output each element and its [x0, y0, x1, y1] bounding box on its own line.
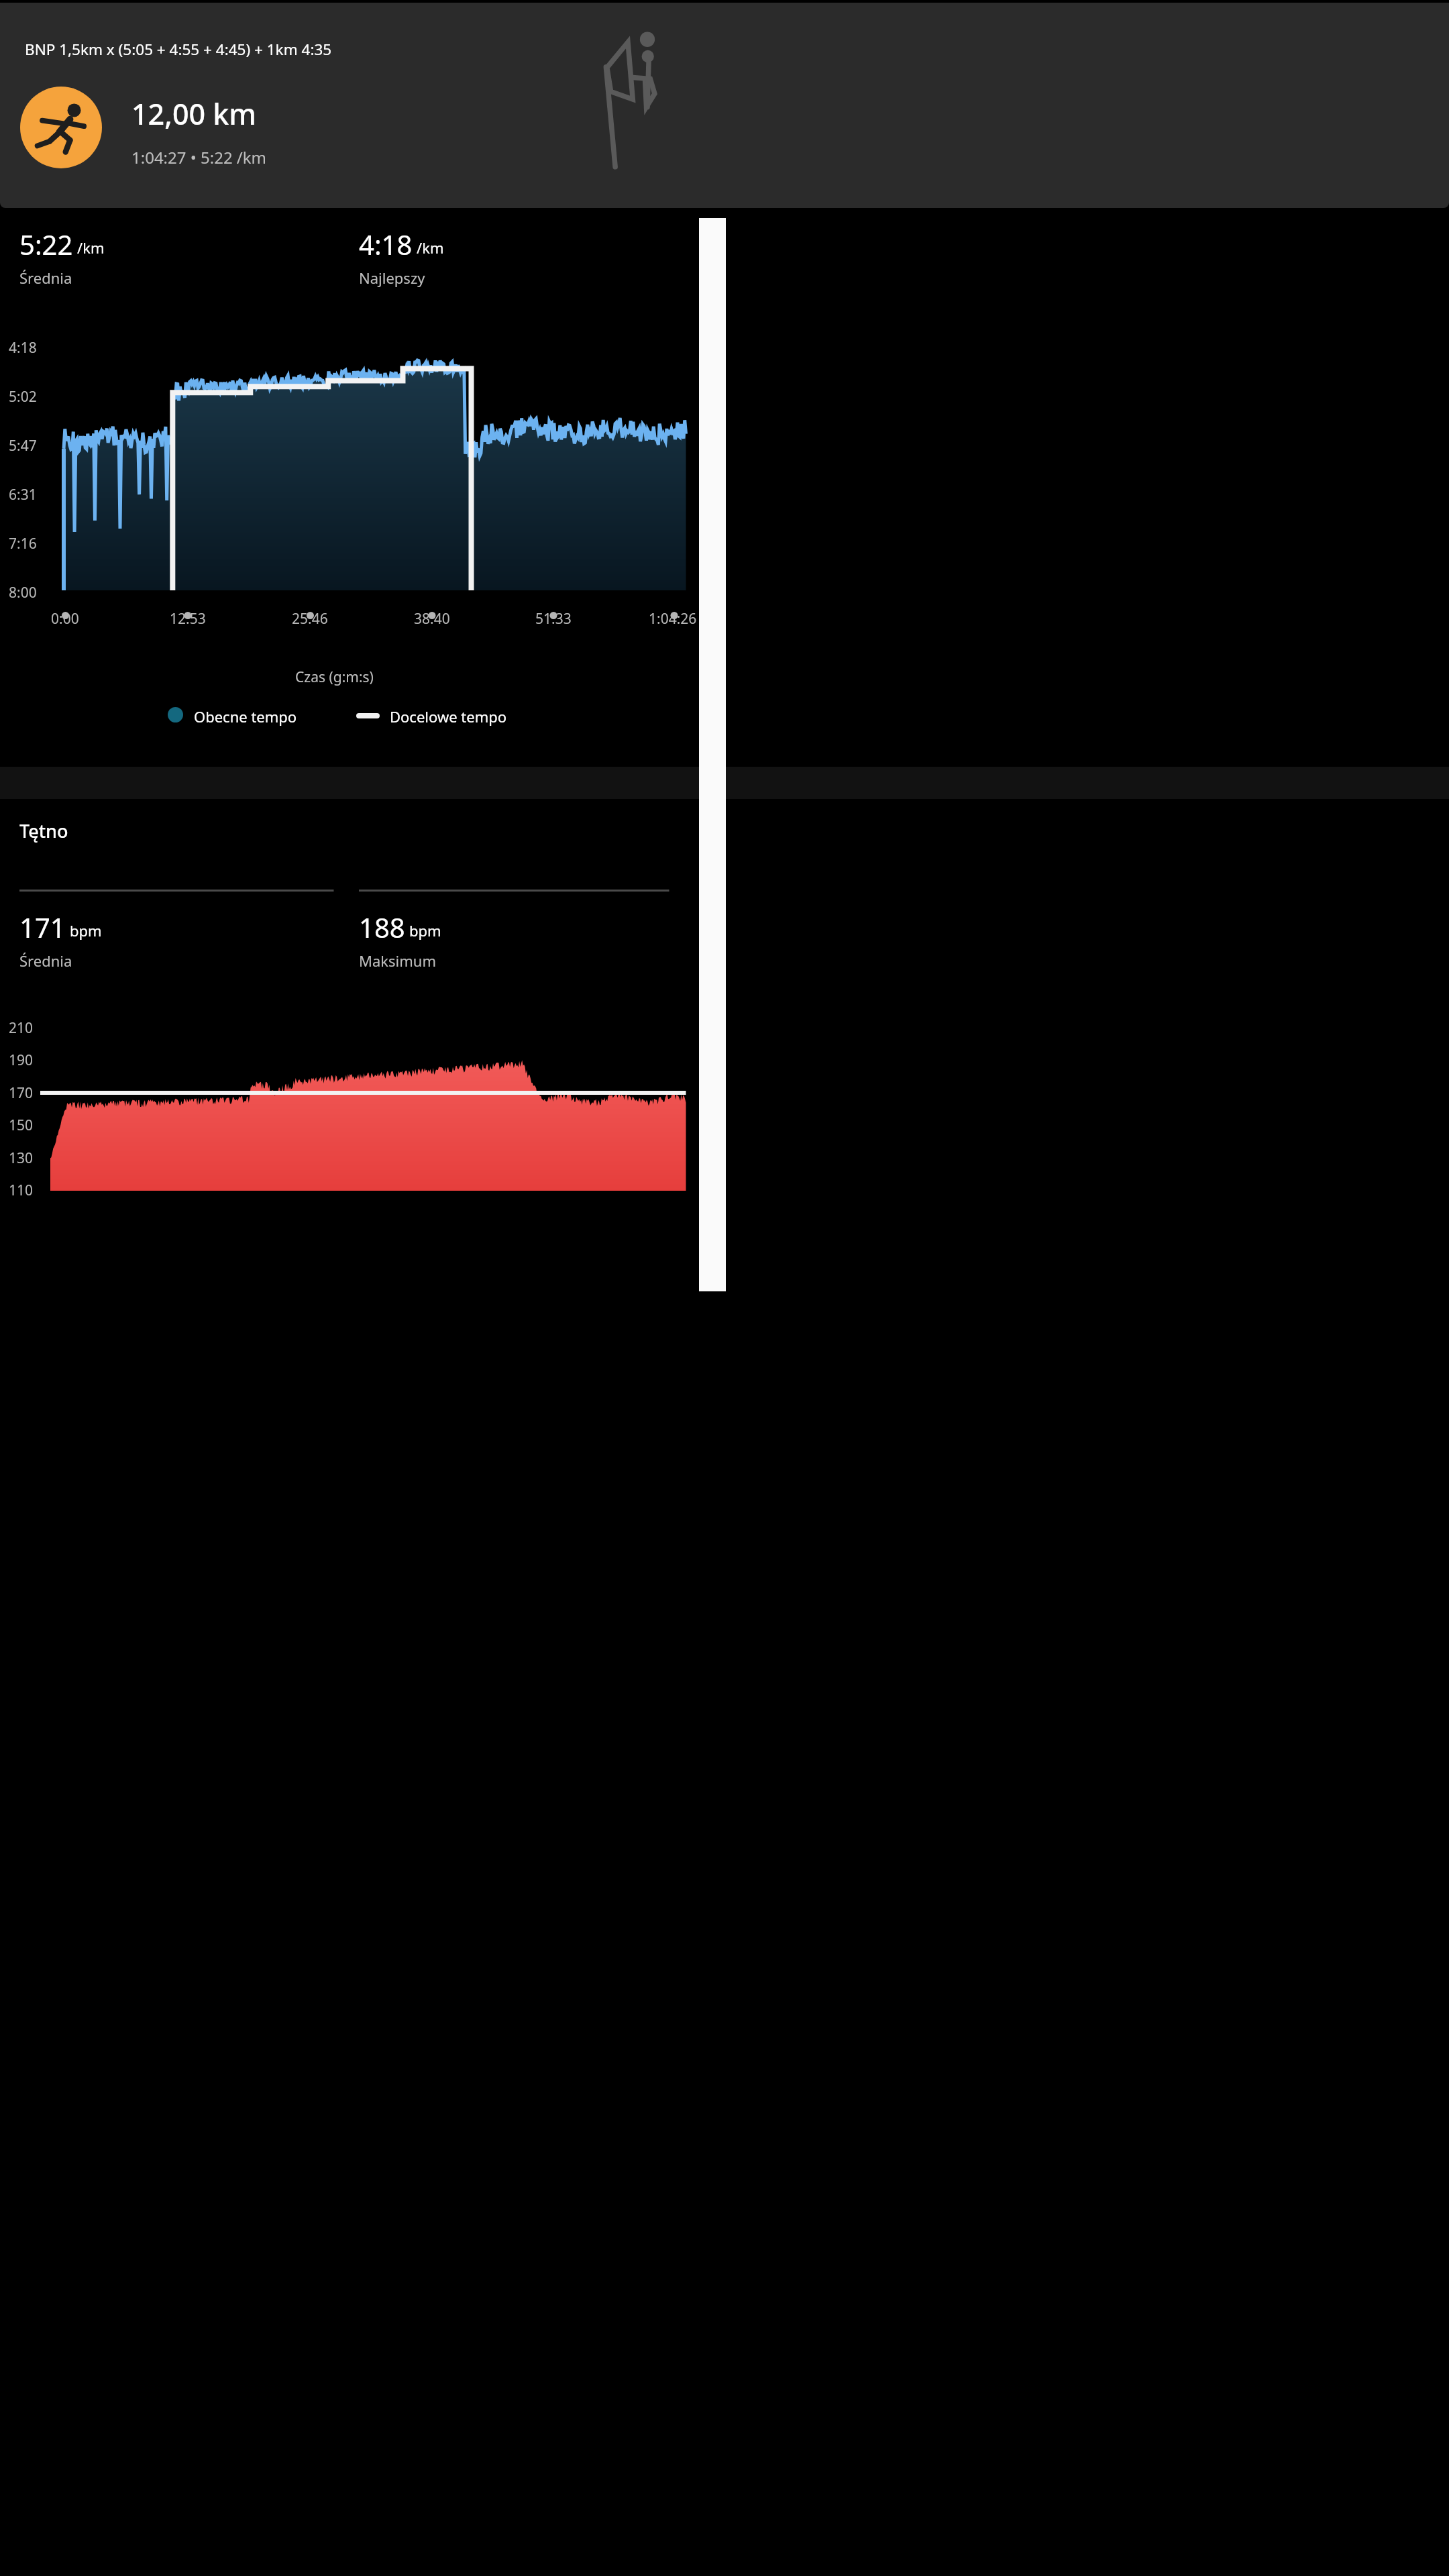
staticText: Najlepszy: [359, 268, 425, 288]
staticText: Maksimum: [359, 951, 436, 971]
staticText: bpm: [70, 920, 102, 941]
staticText: 1:04:27 • 5:22 /km: [131, 146, 267, 168]
staticText: bpm: [409, 920, 441, 941]
staticText: 170: [9, 1083, 34, 1103]
staticText: 190: [9, 1051, 34, 1070]
staticText: 171: [19, 909, 66, 945]
staticText: BNP 1,5km x (5:05 + 4:55 + 4:45) + 1km 4…: [25, 39, 332, 60]
staticText: 4:18: [9, 338, 37, 358]
staticText: 25:46: [292, 609, 328, 629]
staticText: Średnia: [19, 951, 72, 971]
other: Workout goal flag: [589, 29, 686, 170]
staticText: 150: [9, 1116, 34, 1135]
staticText: 51:33: [535, 609, 572, 629]
staticText: 1:04:26: [649, 609, 697, 629]
staticText: Tętno: [19, 818, 68, 843]
staticText: /km: [417, 237, 444, 258]
staticText: 5:22: [19, 226, 73, 262]
staticText: Średnia: [19, 268, 72, 288]
staticText: 8:00: [9, 583, 37, 602]
staticText: 4:18: [359, 226, 413, 262]
staticText: 12,00 km: [131, 94, 257, 133]
staticText: 210: [9, 1018, 34, 1038]
staticText: Obecne tempo: [194, 706, 297, 727]
staticText: 12:53: [170, 609, 206, 629]
button[interactable]: BNP 1,5km x (5:05 + 4:55 + 4:45) + 1km 4…: [0, 3, 1449, 208]
staticText: 38:40: [414, 609, 450, 629]
staticText: 130: [9, 1148, 34, 1168]
staticText: Czas (g:m:s): [295, 667, 374, 687]
staticText: 188: [359, 909, 405, 945]
staticText: 5:02: [9, 387, 37, 407]
staticText: 5:47: [9, 436, 37, 455]
staticText: 0:00: [51, 609, 79, 629]
staticText: 110: [9, 1181, 34, 1200]
staticText: /km: [77, 237, 105, 258]
staticText: 7:16: [9, 534, 37, 553]
staticText: 6:31: [9, 485, 37, 504]
staticText: Docelowe tempo: [390, 706, 507, 727]
